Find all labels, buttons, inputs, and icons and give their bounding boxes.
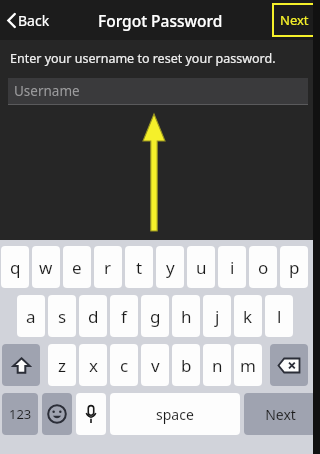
button[interactable]: j [203,295,231,337]
button[interactable]: h [172,295,200,337]
button[interactable]: Emoji [42,393,72,435]
button[interactable]: b [172,344,200,386]
button[interactable]: t [125,246,153,288]
staticText: f [121,305,127,328]
staticText: Next [280,11,309,29]
button[interactable]: c [110,344,138,386]
button[interactable]: Username [8,78,308,104]
button[interactable]: k [234,295,262,337]
button[interactable]: w [32,246,60,288]
button[interactable]: q [1,246,29,288]
button[interactable]: Back [0,5,58,36]
button[interactable]: v [141,344,169,386]
button[interactable]: e [63,246,91,288]
button[interactable]: Shift [2,344,40,386]
staticText: s [58,305,67,328]
staticText: h [181,305,192,328]
staticText: 123 [9,405,32,423]
button[interactable]: f [110,295,138,337]
staticText: e [72,256,82,279]
button[interactable]: p [280,246,308,288]
staticText: g [150,305,161,328]
button[interactable]: r [94,246,122,288]
staticText: j [215,305,220,328]
button[interactable]: m [234,344,262,386]
button[interactable]: g [141,295,169,337]
staticText: z [58,354,66,377]
button[interactable]: u [187,246,215,288]
staticText: p [289,256,300,279]
staticText: q [10,256,21,279]
staticText: a [26,305,36,328]
staticText: Enter your username to reset your passwo… [10,50,276,67]
staticText: i [230,256,235,279]
staticText: y [166,256,175,279]
button[interactable]: Next [244,393,316,435]
staticText: w [39,256,53,279]
staticText: space [156,405,194,424]
button[interactable]: Next [272,3,316,37]
button[interactable]: n [203,344,231,386]
staticText: k [243,305,253,328]
staticText: m [240,354,256,377]
staticText: r [104,256,112,279]
button[interactable]: x [79,344,107,386]
staticText: b [181,354,192,377]
staticText: d [88,305,99,328]
staticText: x [89,354,98,377]
button[interactable]: a [17,295,45,337]
staticText: l [277,305,282,328]
staticText: n [212,354,223,377]
button[interactable]: i [218,246,246,288]
staticText: o [258,256,269,279]
staticText: Next [265,405,296,424]
staticText: t [136,256,143,279]
staticText: v [151,354,160,377]
staticText: Username [14,82,80,100]
button[interactable]: space [110,393,240,435]
staticText: c [120,354,129,377]
staticText: Back [18,11,50,30]
button[interactable]: z [48,344,76,386]
button[interactable]: d [79,295,107,337]
staticText: u [196,256,207,279]
button[interactable]: o [249,246,277,288]
button[interactable]: l [265,295,293,337]
staticText: Forgot Password [98,10,223,31]
button[interactable]: Dictate [76,393,106,435]
button[interactable]: s [48,295,76,337]
button[interactable]: y [156,246,184,288]
button[interactable]: Backspace [270,344,308,386]
button[interactable]: 123 [2,393,38,435]
